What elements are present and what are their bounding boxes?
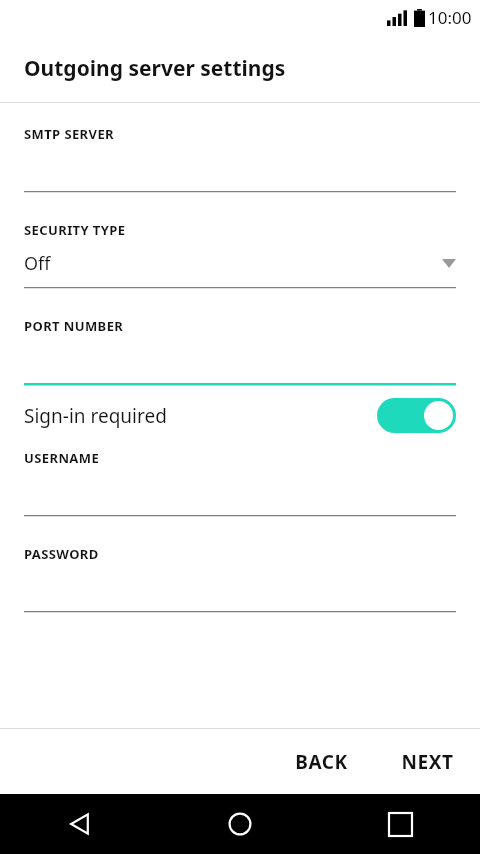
staticText: Off: [24, 251, 51, 276]
staticText: Outgoing server settings: [24, 54, 286, 83]
button[interactable]: NEXT: [385, 739, 470, 785]
other: Expand security type: [442, 259, 456, 268]
button[interactable]: Off: [24, 239, 456, 287]
staticText: PASSWORD: [24, 545, 99, 563]
button[interactable]: Back: [0, 794, 160, 854]
staticText: 10:00: [428, 6, 472, 29]
button[interactable]: Home: [160, 794, 320, 854]
button[interactable]: Recent apps: [320, 794, 480, 854]
staticText: USERNAME: [24, 449, 100, 467]
staticText: SMTP SERVER: [24, 125, 115, 143]
staticText: PORT NUMBER: [24, 317, 124, 335]
staticText: Sign-in required: [24, 403, 167, 429]
staticText: NEXT: [401, 749, 454, 775]
staticText: BACK: [295, 749, 348, 775]
button[interactable]: Sign-in required: [24, 388, 456, 443]
button[interactable]: BACK: [279, 739, 364, 785]
staticText: SECURITY TYPE: [24, 221, 126, 239]
